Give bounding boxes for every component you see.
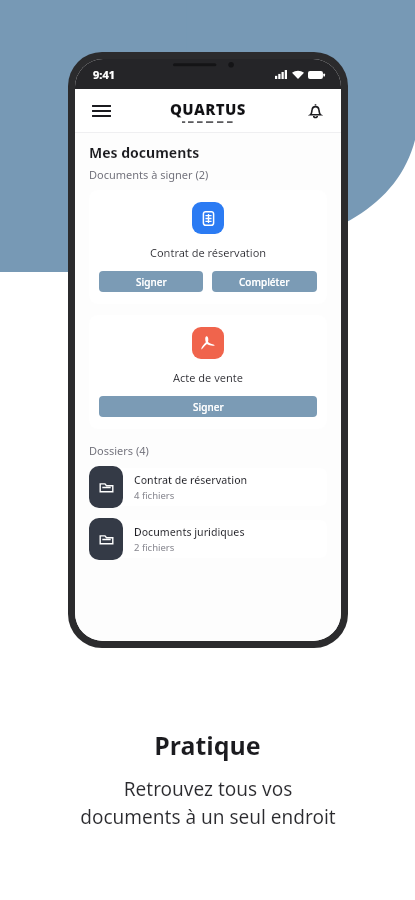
- button[interactable]: Contrat de réservation: [89, 465, 327, 509]
- staticText: Acte de vente: [173, 370, 243, 385]
- button[interactable]: Signer: [99, 271, 203, 292]
- button[interactable]: Signer: [99, 396, 317, 417]
- staticText: Compléter: [239, 275, 290, 289]
- staticText: Retrouvez tous vos documents à un seul e…: [80, 776, 336, 830]
- button[interactable]: Menu: [87, 97, 115, 125]
- button[interactable]: Contrat de réservation: [89, 190, 327, 304]
- staticText: Mes documents: [89, 143, 200, 162]
- button[interactable]: Notifications: [301, 97, 329, 125]
- button[interactable]: Acte de vente: [89, 315, 327, 429]
- staticText: 2 fichiers: [134, 541, 175, 554]
- staticText: Documents à signer (2): [89, 167, 209, 182]
- staticText: 4 fichiers: [134, 489, 175, 502]
- button[interactable]: Compléter: [212, 271, 317, 292]
- staticText: QUARTUS: [170, 99, 246, 119]
- staticText: Dossiers (4): [89, 443, 149, 458]
- staticText: Signer: [136, 275, 167, 289]
- staticText: Contrat de réservation: [134, 473, 248, 487]
- staticText: Signer: [193, 400, 224, 414]
- staticText: Pratique: [154, 728, 261, 762]
- staticText: 9:41: [93, 67, 115, 82]
- button[interactable]: Documents juridiques: [89, 517, 327, 561]
- staticText: Contrat de réservation: [150, 245, 267, 260]
- staticText: Documents juridiques: [134, 525, 245, 539]
